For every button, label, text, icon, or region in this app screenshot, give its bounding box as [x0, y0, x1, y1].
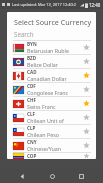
staticText: Search	[14, 30, 34, 38]
staticText: BYN	[27, 41, 37, 47]
staticText: Canadian Dollar	[27, 75, 67, 82]
button[interactable]: Home	[45, 169, 59, 183]
staticText: COP	[27, 153, 37, 159]
button[interactable]: Back	[15, 169, 29, 183]
staticText: CAD	[27, 69, 37, 75]
staticText: Chilean Peso	[27, 131, 59, 138]
staticText: Congolese Franc	[27, 89, 69, 96]
staticText: CDF	[27, 83, 36, 89]
button[interactable]: CLP	[7, 125, 96, 138]
button[interactable]: CLF	[7, 111, 96, 124]
button[interactable]: Favourite BZD	[81, 56, 92, 67]
button[interactable]: COP	[7, 153, 96, 159]
button[interactable]: Favourite CDF	[81, 84, 92, 95]
staticText: Last updated: Mar 13, 2017 12:40:2	[12, 2, 76, 7]
button[interactable]: Recent apps	[74, 169, 88, 183]
button[interactable]: Favourite CLF	[81, 112, 92, 123]
button[interactable]: Favourite CHF	[81, 98, 92, 109]
staticText: Belarusian Ruble	[27, 47, 69, 54]
button[interactable]: Favourite CNY	[81, 140, 92, 151]
staticText: CNY	[27, 139, 37, 145]
staticText: CHF	[27, 97, 36, 103]
button[interactable]: Favourite COP	[81, 153, 92, 159]
button[interactable]: Favourite CLP	[81, 126, 92, 137]
button[interactable]: Search	[14, 30, 90, 38]
button[interactable]: CAD	[7, 69, 96, 82]
staticText: Select Source Currency	[14, 17, 92, 27]
button[interactable]: CDF	[7, 83, 96, 96]
button[interactable]: CHF	[7, 97, 96, 110]
staticText: Belize Dollar	[27, 61, 58, 68]
staticText: Chinese/Yuan Renminbi	[27, 145, 81, 152]
button[interactable]: BZD	[7, 55, 96, 68]
staticText: BZD	[27, 55, 37, 61]
staticText: CLP	[27, 125, 36, 131]
staticText: CLF	[27, 111, 36, 117]
button[interactable]: CNY	[7, 139, 96, 152]
button[interactable]: Favourite CAD	[81, 70, 92, 81]
staticText: Chilean Unit of Account (UF)	[27, 117, 81, 124]
staticText: 12:40	[89, 2, 101, 8]
staticText: Swiss Franc	[27, 103, 56, 110]
button[interactable]: Favourite BYN	[81, 42, 92, 53]
button[interactable]: BYN	[7, 41, 96, 54]
